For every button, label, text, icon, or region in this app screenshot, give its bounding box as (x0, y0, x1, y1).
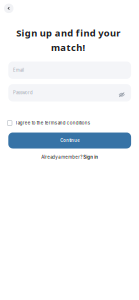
button[interactable]: Back (4, 4, 13, 13)
button[interactable]: Continue (8, 132, 131, 148)
staticText: Continue (60, 138, 79, 143)
button[interactable]: I agree to the terms and conditions (7, 118, 130, 127)
button[interactable]: Already a member? Sign in (8, 153, 131, 162)
staticText: Email (13, 68, 24, 73)
staticText: Sign up and find your match! (16, 26, 120, 54)
staticText: I agree to the terms and conditions (16, 120, 90, 126)
staticText: Password (13, 90, 33, 95)
staticText: Already a member? Sign in (41, 154, 98, 160)
